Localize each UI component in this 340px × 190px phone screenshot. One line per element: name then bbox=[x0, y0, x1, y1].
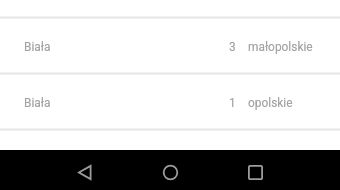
staticText: małopolskie bbox=[248, 40, 340, 54]
staticText: 1 bbox=[229, 96, 236, 110]
button[interactable]: Home bbox=[127, 150, 212, 190]
staticText: Biała bbox=[24, 40, 218, 54]
button[interactable]: Biała bbox=[0, 75, 340, 128]
staticText: Biała bbox=[24, 96, 218, 110]
staticText: 3 bbox=[229, 40, 236, 54]
staticText: opolskie bbox=[248, 96, 340, 110]
button[interactable]: Recents bbox=[212, 150, 297, 190]
button[interactable]: Biała bbox=[0, 19, 340, 72]
button[interactable]: Back bbox=[42, 150, 127, 190]
